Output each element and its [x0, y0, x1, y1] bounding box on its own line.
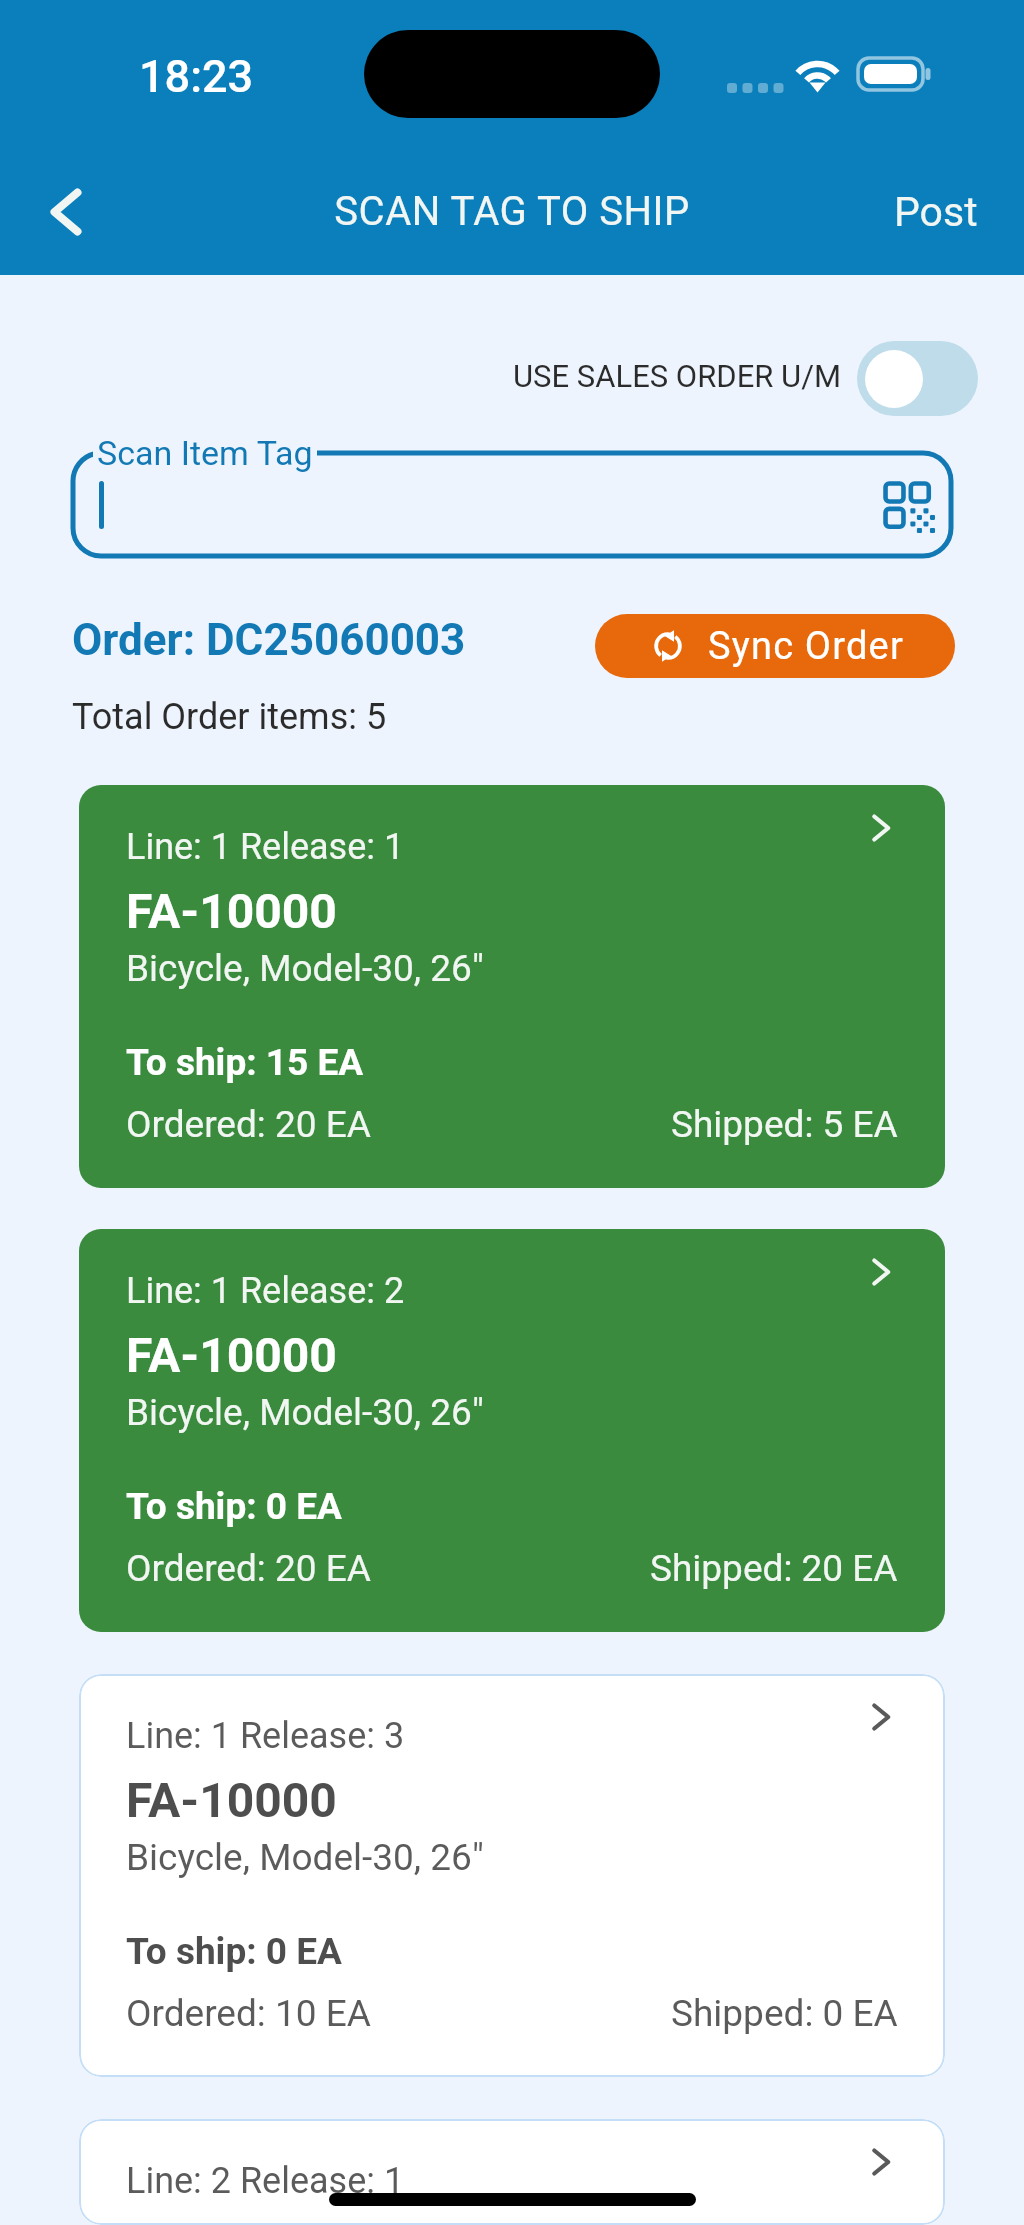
- staticText: Bicycle, Model-30, 26": [126, 1391, 484, 1434]
- staticText: Scan Item Tag: [97, 433, 313, 473]
- button[interactable]: Open line detail: [867, 1255, 901, 1289]
- staticText: FA-10000: [126, 883, 337, 939]
- button[interactable]: Back: [28, 174, 104, 250]
- button[interactable]: Post: [884, 180, 988, 244]
- staticText: Bicycle, Model-30, 26": [126, 1836, 484, 1879]
- staticText: 18:23: [139, 50, 254, 103]
- staticText: Ordered: 20 EA: [126, 1103, 371, 1146]
- staticText: Total Order items: 5: [72, 696, 387, 738]
- staticText: SCAN TAG TO SHIP: [334, 188, 690, 235]
- staticText: Line: 2 Release: 1: [126, 2160, 405, 2202]
- button[interactable]: Line: 1 Release: 1: [79, 785, 945, 1188]
- staticText: Line: 1 Release: 1: [126, 826, 405, 868]
- staticText: Shipped: 0 EA: [671, 1992, 898, 2035]
- staticText: To ship: 0 EA: [126, 1485, 342, 1528]
- button[interactable]: Line: 1 Release: 2: [79, 1229, 945, 1632]
- staticText: Ordered: 10 EA: [126, 1992, 371, 2035]
- staticText: USE SALES ORDER U/M: [513, 358, 841, 394]
- button[interactable]: USE SALES ORDER U/M: [513, 341, 978, 416]
- button[interactable]: Line: 2 Release: 1: [79, 2119, 945, 2225]
- button[interactable]: Open line detail: [867, 2145, 901, 2179]
- staticText: Bicycle, Model-30, 26": [126, 947, 484, 990]
- staticText: To ship: 15 EA: [126, 1041, 364, 1084]
- staticText: Order: DC25060003: [72, 614, 466, 666]
- staticText: FA-10000: [126, 1327, 337, 1383]
- staticText: To ship: 0 EA: [126, 1930, 342, 1973]
- button[interactable]: Scan QR code: [876, 474, 936, 534]
- staticText: Line: 1 Release: 3: [126, 1715, 405, 1757]
- staticText: Shipped: 20 EA: [650, 1547, 898, 1590]
- button[interactable]: Open line detail: [867, 811, 901, 845]
- staticText: Post: [894, 188, 978, 236]
- button[interactable]: Open line detail: [867, 1700, 901, 1734]
- staticText: Shipped: 5 EA: [671, 1103, 898, 1146]
- button[interactable]: Sync Order: [595, 614, 955, 678]
- button[interactable]: Line: 1 Release: 3: [79, 1674, 945, 2077]
- staticText: FA-10000: [126, 1772, 337, 1828]
- staticText: Line: 1 Release: 2: [126, 1270, 405, 1312]
- staticText: Ordered: 20 EA: [126, 1547, 371, 1590]
- staticText: Sync Order: [708, 624, 904, 669]
